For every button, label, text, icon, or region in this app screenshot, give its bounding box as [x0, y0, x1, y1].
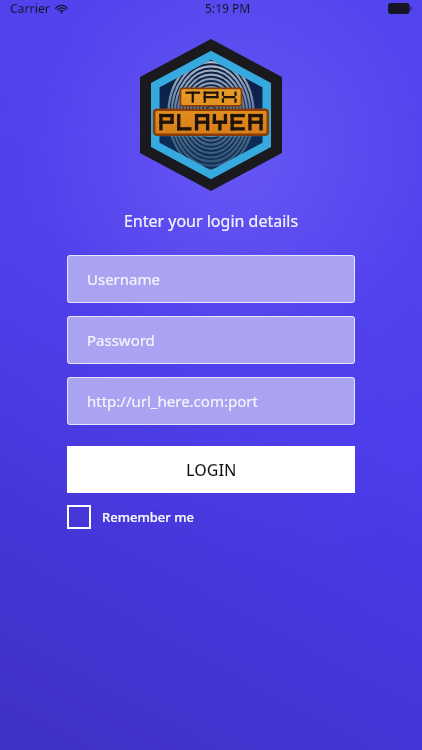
staticText: 5:19 PM	[205, 0, 251, 16]
button[interactable]: Remember me	[67, 505, 194, 529]
button[interactable]: LOGIN	[67, 446, 355, 493]
staticText: http://url_here.com:port	[87, 391, 258, 411]
staticText: Remember me	[102, 508, 194, 526]
staticText: Enter your login details	[0, 210, 422, 232]
button[interactable]: Password	[67, 316, 355, 364]
button[interactable]: Username	[67, 255, 355, 303]
staticText: Password	[87, 330, 155, 350]
other: TPX Player logo	[140, 39, 282, 191]
staticText: Carrier	[10, 0, 50, 16]
staticText: Username	[87, 269, 160, 289]
button[interactable]: http://url_here.com:port	[67, 377, 355, 425]
staticText: LOGIN	[186, 459, 237, 481]
